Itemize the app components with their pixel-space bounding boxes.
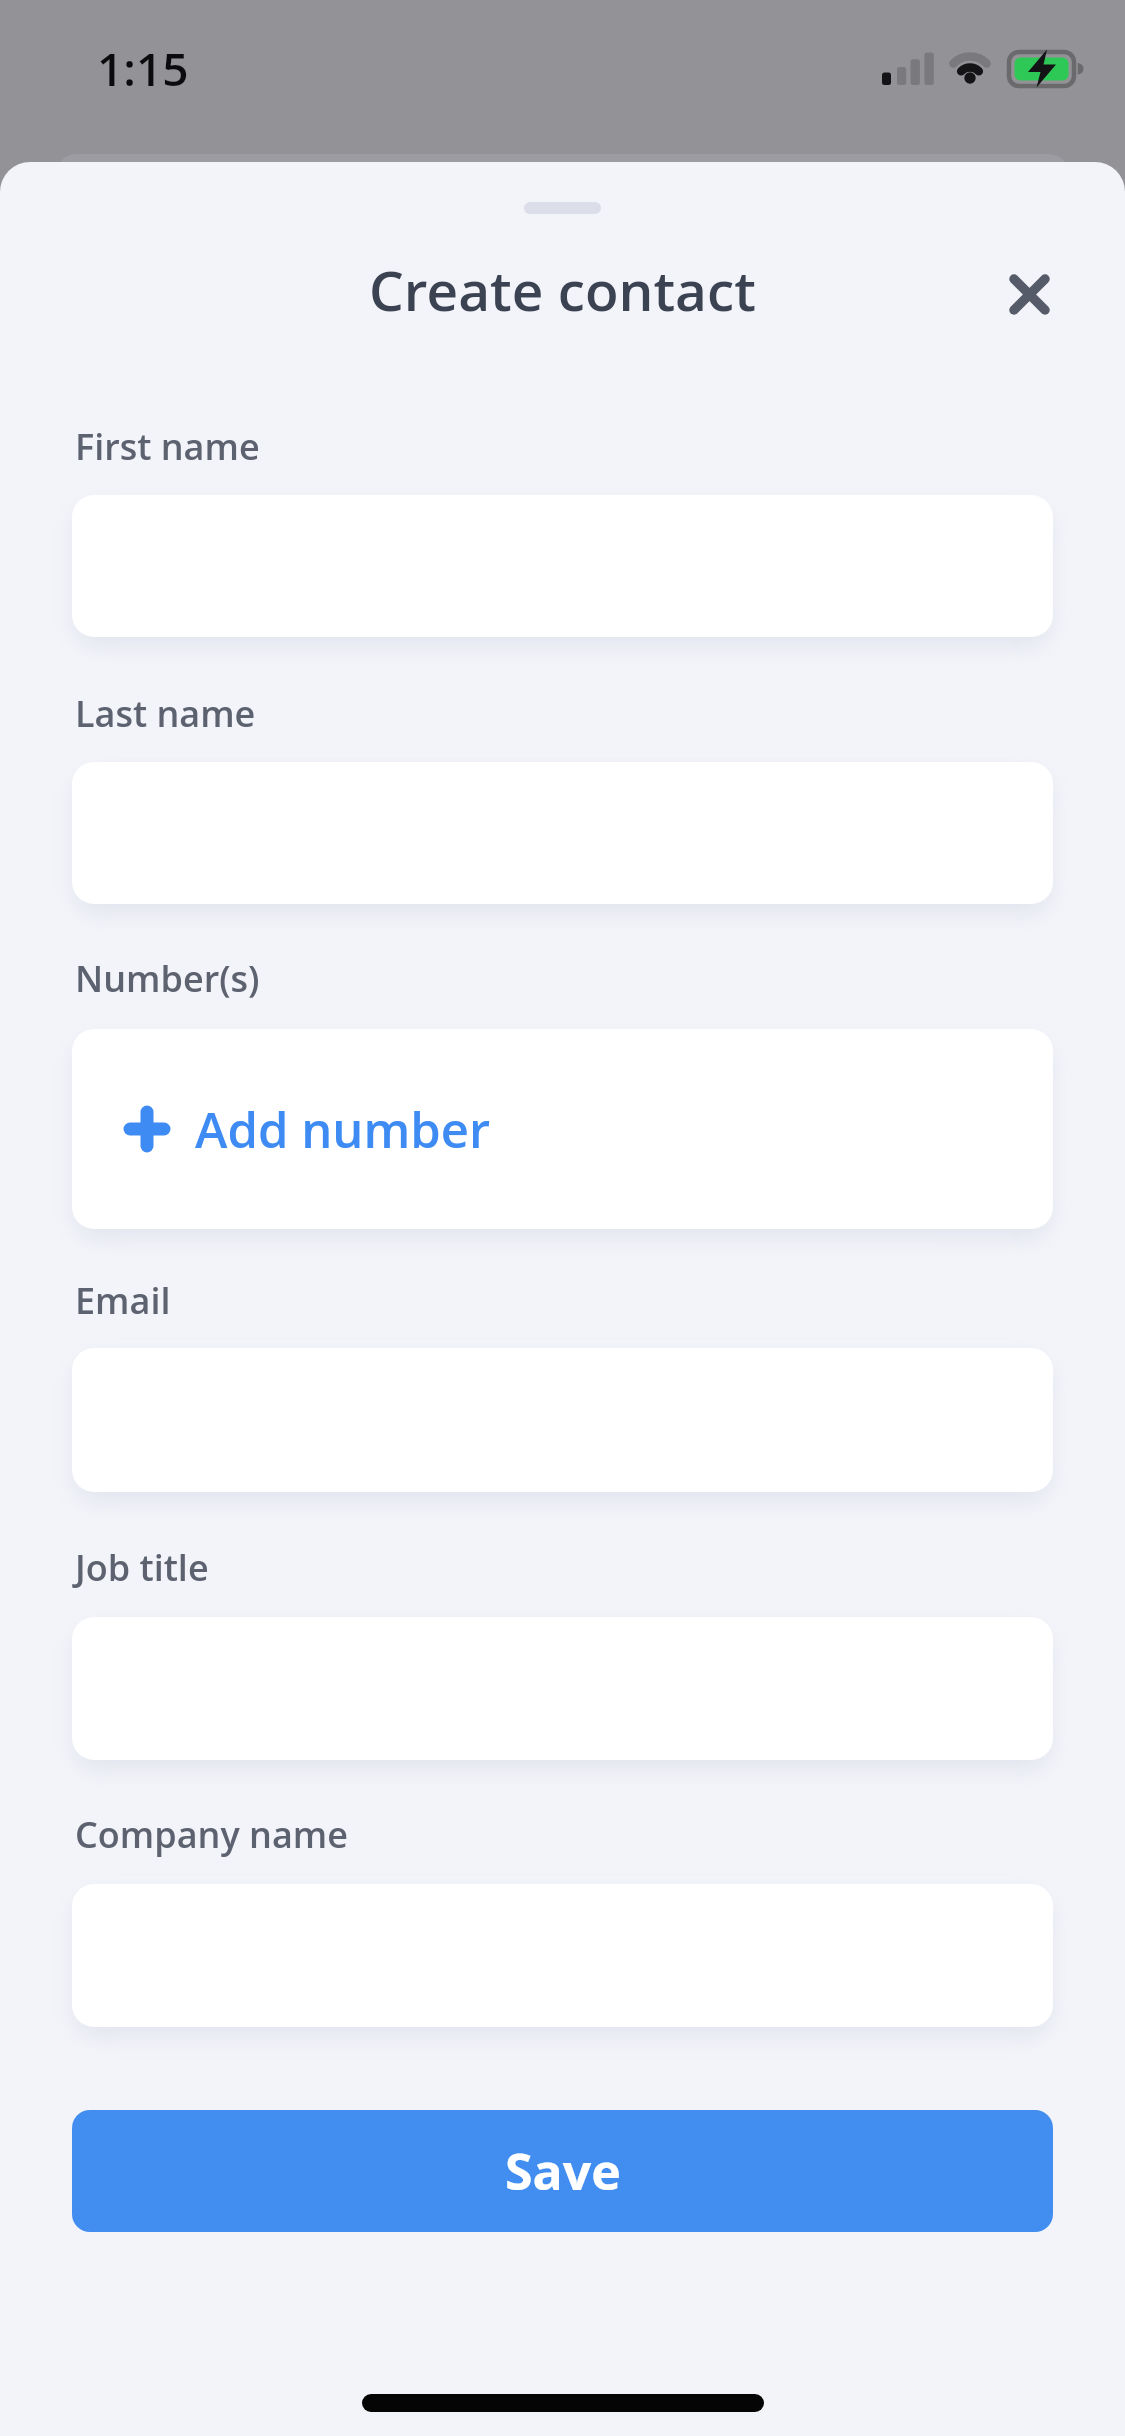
button[interactable]: Save [72,2110,1053,2232]
staticText: Number(s) [75,954,260,1003]
staticText: Add number [195,1096,491,1163]
staticText: Job title [75,1543,209,1592]
staticText: Save [505,2137,621,2205]
staticText: Email [75,1276,171,1325]
button[interactable] [992,257,1066,331]
staticText: Company name [75,1810,348,1859]
staticText: Last name [75,689,256,738]
staticText: First name [75,422,260,471]
staticText: Create contact [369,252,756,327]
staticText: 1:15 [97,37,189,89]
button[interactable]: Add number [72,1029,1053,1229]
